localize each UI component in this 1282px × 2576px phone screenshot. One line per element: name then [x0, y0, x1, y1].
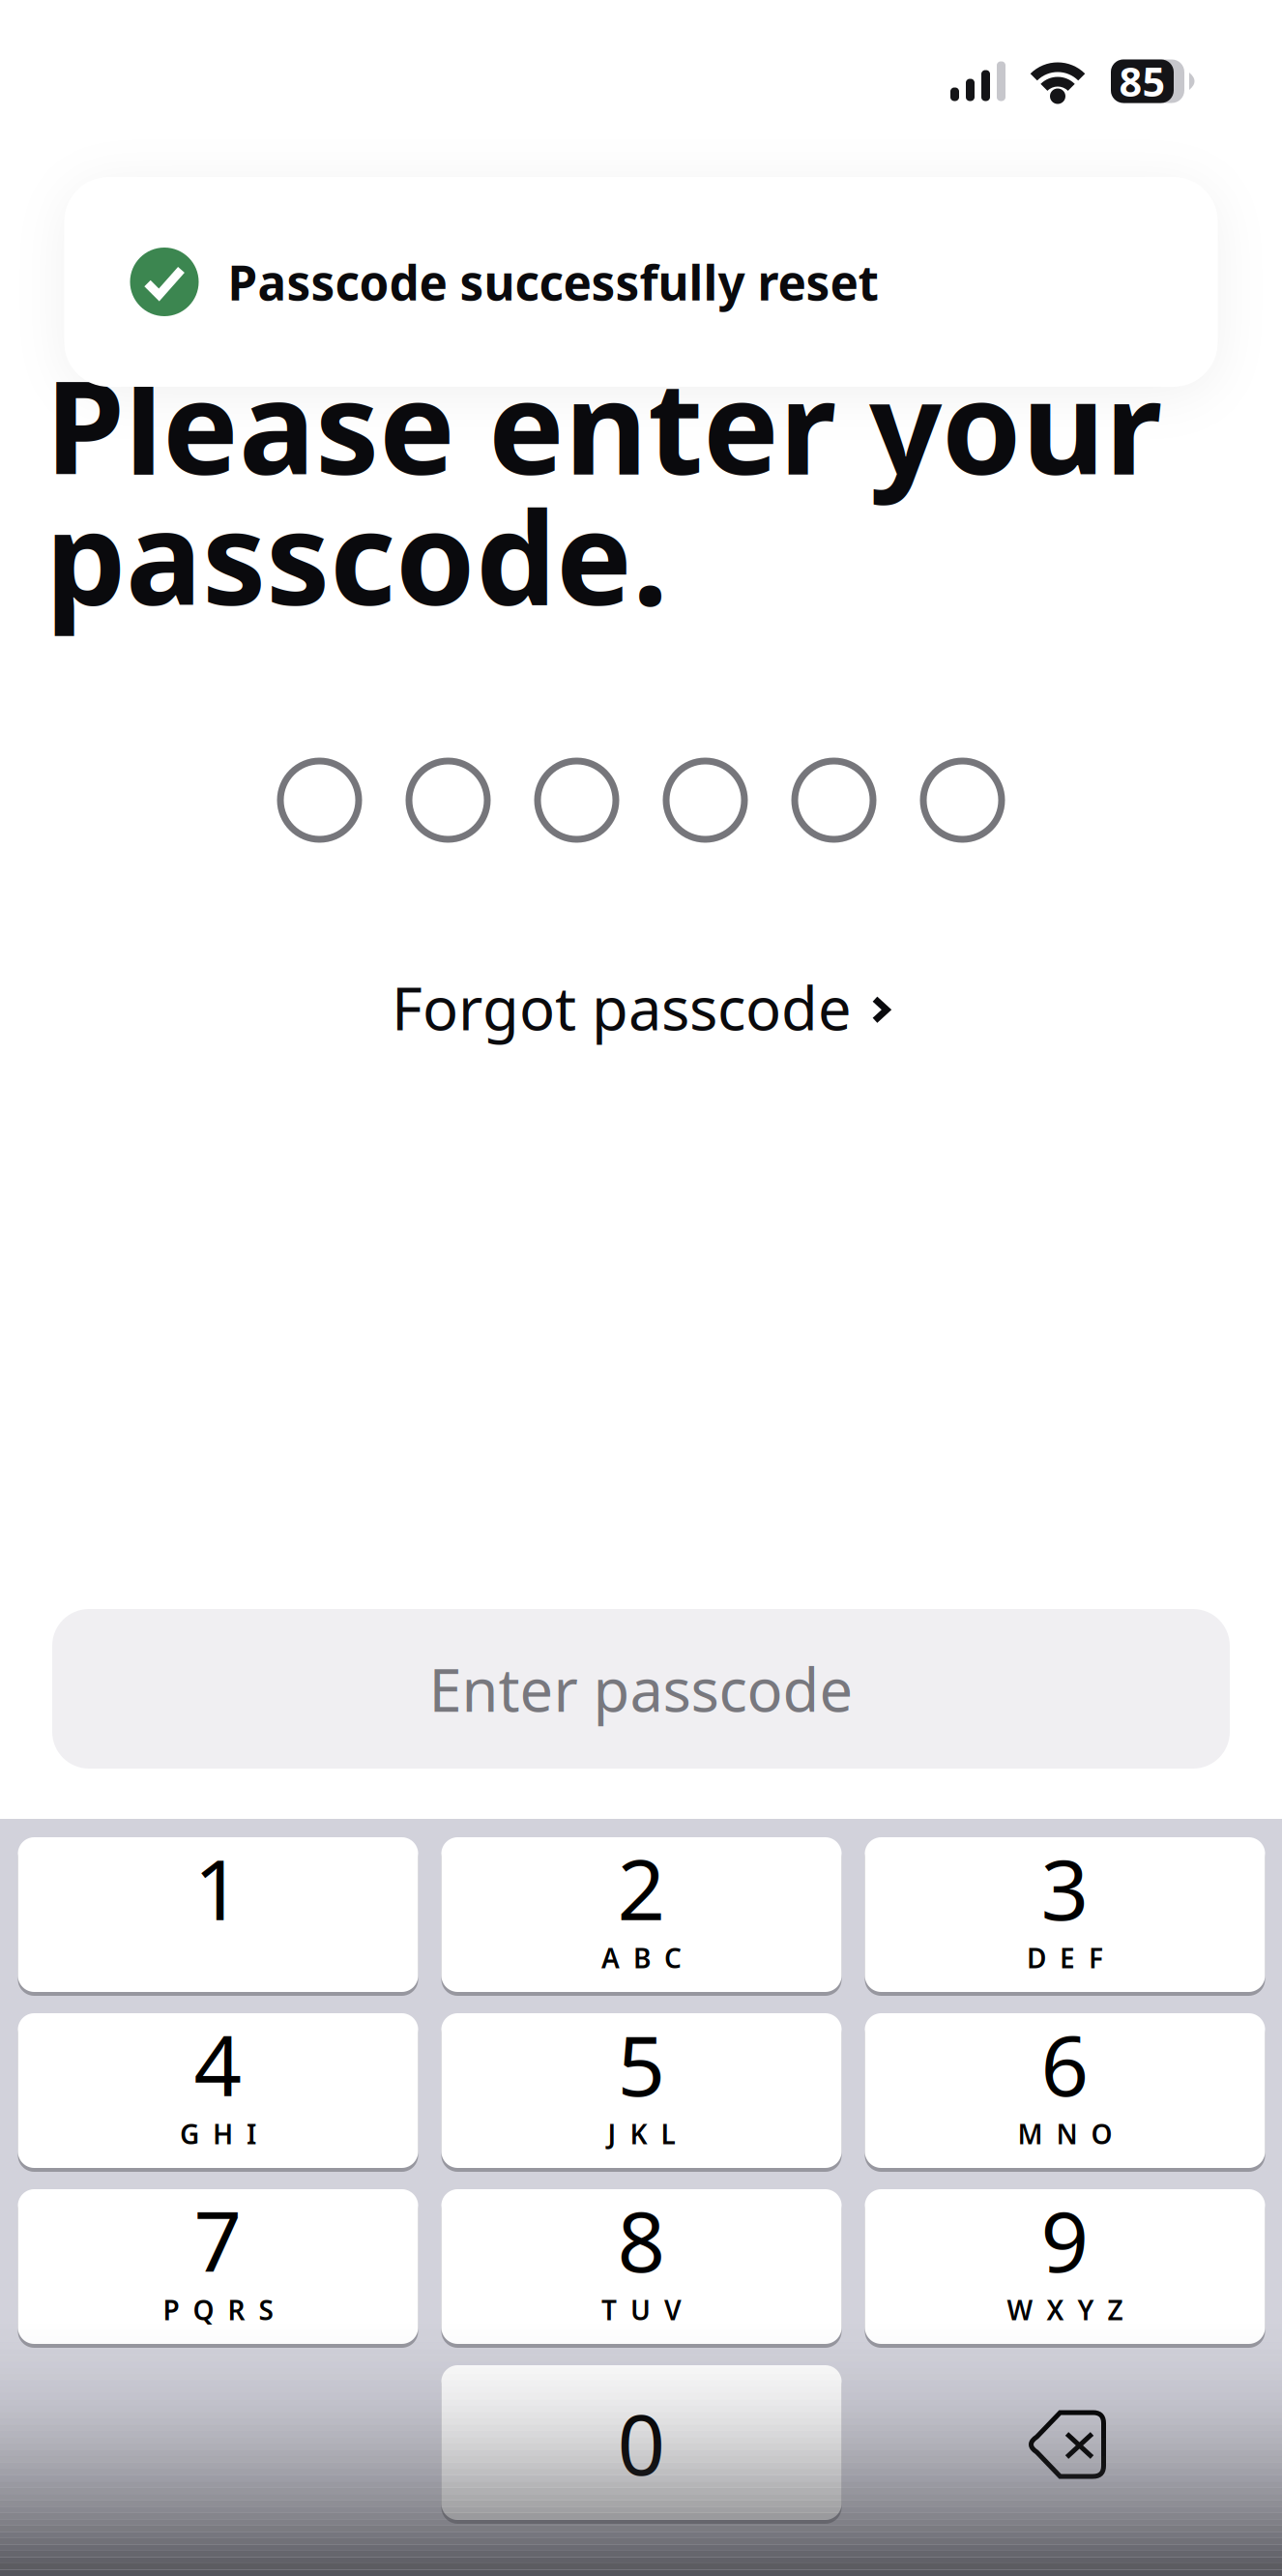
button[interactable]: Forgot passcode — [392, 956, 890, 1058]
staticText: A B C — [601, 1940, 682, 1976]
staticText: Please enter your — [45, 340, 1162, 510]
button[interactable]: Enter passcode — [0, 1609, 1282, 1769]
staticText: 6 — [1041, 2008, 1089, 2119]
staticText: 4 — [194, 2008, 242, 2119]
button[interactable]: 0 — [441, 2367, 842, 2522]
button[interactable]: 5 — [441, 2015, 842, 2170]
staticText: Forgot passcode — [392, 968, 852, 1047]
staticText: 5 — [617, 2008, 666, 2119]
button[interactable]: 8 — [441, 2191, 842, 2346]
staticText: J K L — [608, 2116, 675, 2152]
staticText: Passcode successfully reset — [228, 250, 878, 313]
staticText: 9 — [1041, 2184, 1089, 2295]
button[interactable]: 9 — [865, 2191, 1265, 2346]
button[interactable]: 6 — [865, 2015, 1265, 2170]
button[interactable]: 1 — [18, 1839, 418, 1994]
staticText: Enter passcode — [429, 1649, 853, 1728]
staticText: W X Y Z — [1007, 2292, 1123, 2328]
staticText: M N O — [1018, 2116, 1112, 2152]
staticText: 8 — [617, 2184, 666, 2295]
button[interactable]: Delete — [865, 2367, 1265, 2522]
staticText: D E F — [1027, 1940, 1103, 1976]
staticText: T U V — [601, 2292, 682, 2328]
staticText: G H I — [180, 2116, 256, 2152]
staticText: passcode. — [45, 471, 668, 640]
button[interactable]: 4 — [18, 2015, 418, 2170]
staticText: 2 — [617, 1832, 666, 1943]
button[interactable]: 2 — [441, 1839, 842, 1994]
staticText: 0 — [617, 2387, 666, 2498]
staticText: P Q R S — [163, 2292, 273, 2328]
staticText: 3 — [1041, 1832, 1089, 1943]
button[interactable]: 7 — [18, 2191, 418, 2346]
button[interactable]: 3 — [865, 1839, 1265, 1994]
staticText: 85 — [1119, 55, 1165, 108]
staticText: 1 — [194, 1832, 242, 1943]
staticText: 7 — [194, 2184, 242, 2295]
